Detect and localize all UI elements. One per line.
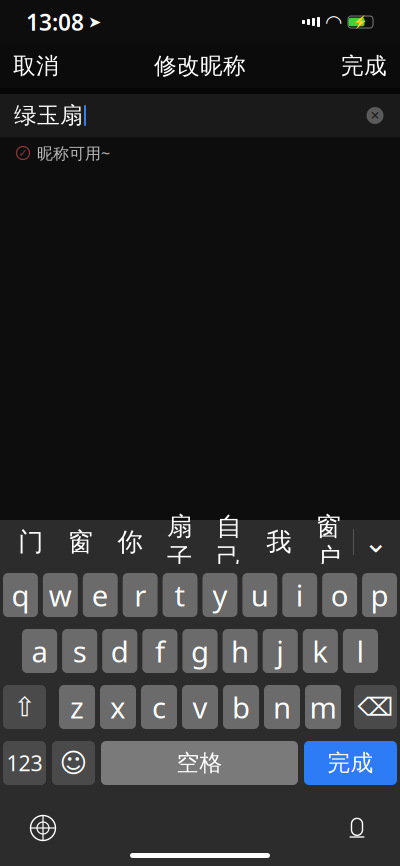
- staticText: ☺: [59, 748, 87, 778]
- staticText: 门: [18, 526, 43, 557]
- staticText: ⚡: [353, 15, 368, 29]
- button[interactable]: 完成: [328, 44, 400, 88]
- button[interactable]: s: [62, 629, 97, 673]
- staticText: 昵称可用~: [37, 142, 110, 164]
- button[interactable]: 取消: [0, 44, 72, 88]
- staticText: 窗: [68, 526, 93, 557]
- button[interactable]: p: [362, 573, 397, 617]
- staticText: 取消: [13, 52, 59, 80]
- button[interactable]: a: [22, 629, 57, 673]
- button[interactable]: r: [123, 573, 158, 617]
- staticText: o: [331, 575, 349, 614]
- button[interactable]: l: [343, 629, 378, 673]
- button[interactable]: u: [242, 573, 277, 617]
- button[interactable]: 我: [254, 520, 303, 564]
- button[interactable]: b: [223, 685, 259, 729]
- staticText: d: [111, 631, 129, 670]
- staticText: c: [152, 687, 166, 726]
- staticText: ✕: [370, 109, 380, 122]
- button[interactable]: h: [223, 629, 258, 673]
- button[interactable]: 空格: [101, 741, 298, 785]
- staticText: 123: [6, 749, 42, 777]
- staticText: q: [11, 575, 29, 614]
- button[interactable]: 切换键盘: [20, 805, 66, 851]
- staticText: 修改昵称: [154, 52, 246, 80]
- button[interactable]: 语音输入: [334, 805, 380, 851]
- button[interactable]: o: [322, 573, 357, 617]
- button[interactable]: 你: [105, 520, 155, 564]
- button[interactable]: d: [102, 629, 137, 673]
- button[interactable]: j: [263, 629, 298, 673]
- button[interactable]: e: [83, 573, 118, 617]
- staticText: h: [231, 631, 249, 670]
- staticText: j: [276, 631, 284, 670]
- staticText: 完成: [327, 749, 373, 777]
- button[interactable]: g: [182, 629, 217, 673]
- staticText: g: [191, 631, 209, 670]
- staticText: s: [73, 631, 87, 670]
- staticText: ➤: [88, 13, 101, 31]
- button[interactable]: 删除: [354, 685, 397, 729]
- button[interactable]: Shift: [3, 685, 46, 729]
- button[interactable]: q: [3, 573, 38, 617]
- button[interactable]: 门: [6, 520, 56, 564]
- button[interactable]: w: [43, 573, 78, 617]
- staticText: w: [49, 575, 72, 614]
- staticText: t: [175, 575, 186, 614]
- button[interactable]: z: [59, 685, 95, 729]
- staticText: p: [371, 575, 389, 614]
- staticText: m: [309, 687, 336, 726]
- staticText: e: [92, 575, 109, 614]
- button[interactable]: 窗户: [303, 520, 353, 564]
- button[interactable]: 收起候选: [354, 520, 398, 564]
- staticText: v: [192, 687, 207, 726]
- button[interactable]: y: [202, 573, 237, 617]
- button[interactable]: f: [142, 629, 177, 673]
- staticText: r: [134, 575, 146, 614]
- staticText: y: [212, 575, 227, 614]
- button[interactable]: t: [163, 573, 197, 617]
- button[interactable]: 表情: [52, 741, 95, 785]
- staticText: u: [251, 575, 269, 614]
- staticText: 你: [117, 526, 142, 557]
- staticText: 窗户: [316, 511, 341, 573]
- staticText: 13:08: [26, 7, 84, 37]
- staticText: i: [296, 575, 304, 614]
- staticText: 完成: [341, 52, 387, 80]
- staticText: ◠: [326, 11, 341, 33]
- button[interactable]: v: [182, 685, 218, 729]
- button[interactable]: 扇子: [155, 520, 204, 564]
- button[interactable]: c: [141, 685, 177, 729]
- staticText: ⌄: [363, 525, 388, 559]
- staticText: b: [232, 687, 250, 726]
- staticText: 绿玉扇: [14, 102, 83, 129]
- button[interactable]: 窗: [56, 520, 105, 564]
- staticText: k: [312, 631, 328, 670]
- button[interactable]: 自己: [204, 520, 254, 564]
- staticText: ⌫: [357, 693, 393, 721]
- staticText: x: [110, 687, 126, 726]
- button[interactable]: m: [305, 685, 341, 729]
- staticText: n: [273, 687, 291, 726]
- staticText: 空格: [176, 749, 222, 777]
- button[interactable]: k: [303, 629, 338, 673]
- button[interactable]: i: [282, 573, 317, 617]
- button[interactable]: n: [264, 685, 300, 729]
- staticText: f: [155, 631, 165, 670]
- staticText: z: [70, 687, 84, 726]
- staticText: l: [356, 631, 364, 670]
- staticText: ✓: [18, 147, 27, 159]
- button[interactable]: x: [100, 685, 136, 729]
- button[interactable]: 123: [3, 741, 46, 785]
- staticText: ⇧: [13, 692, 35, 722]
- button[interactable]: 完成: [304, 741, 397, 785]
- staticText: 我: [266, 526, 291, 557]
- staticText: a: [32, 631, 48, 670]
- staticText: 扇子: [167, 511, 192, 573]
- staticText: 自己: [217, 511, 242, 573]
- button[interactable]: 清除文本: [358, 98, 392, 132]
